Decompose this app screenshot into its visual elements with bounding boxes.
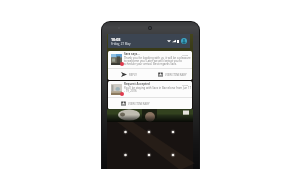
staticText: 10:02: [182, 83, 189, 86]
button[interactable]: Account: [181, 38, 187, 44]
staticText: Request Accepted: [124, 82, 150, 86]
button[interactable]: Request Accepted: [108, 81, 192, 109]
button[interactable]: VIEW ITINERARY: [108, 98, 155, 109]
staticText: VIEW ITINERARY: [128, 102, 150, 106]
button[interactable]: REPLY: [108, 69, 145, 80]
staticText: You'll be staying with Sara in Barcelona…: [124, 86, 192, 93]
button[interactable]: VIEW ITINERARY: [145, 69, 192, 80]
staticText: VIEW ITINERARY: [165, 73, 187, 77]
staticText: REPLY: [129, 73, 137, 77]
staticText: 10:03: [182, 53, 189, 56]
staticText: Thank you for booking with us, it will b…: [124, 56, 191, 66]
staticText: 10:03: [111, 37, 121, 42]
staticText: Friday, 27 May: [111, 42, 131, 46]
staticText: Sara says...: [124, 52, 140, 56]
button[interactable]: Sara says...: [108, 51, 192, 80]
